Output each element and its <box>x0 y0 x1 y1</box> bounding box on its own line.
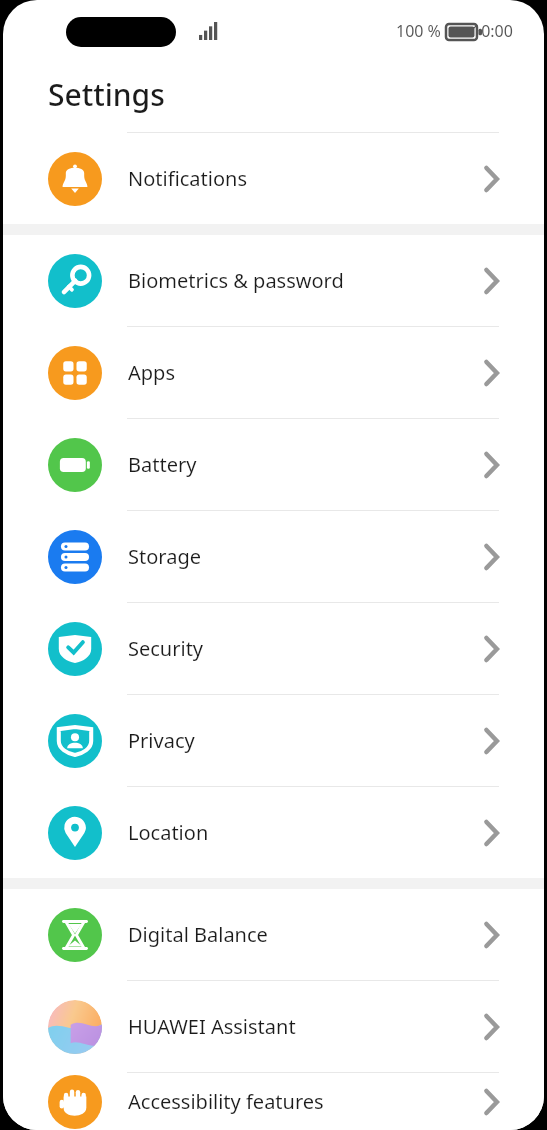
button[interactable]: Location <box>3 786 544 878</box>
staticText: Digital Balance <box>128 921 268 948</box>
button[interactable]: Digital Balance <box>3 889 544 980</box>
staticText: Privacy <box>128 727 195 754</box>
button[interactable]: Storage <box>3 510 544 602</box>
button[interactable]: Privacy <box>3 694 544 786</box>
staticText: Notifications <box>128 165 247 192</box>
staticText: 10:00 <box>472 20 513 42</box>
button[interactable]: Battery <box>3 418 544 510</box>
staticText: 100 % <box>396 20 441 42</box>
button[interactable]: HUAWEI Assistant <box>3 980 544 1072</box>
button[interactable]: Security <box>3 602 544 694</box>
staticText: Security <box>128 635 204 662</box>
staticText: HUAWEI Assistant <box>128 1013 296 1040</box>
staticText: Battery <box>128 451 197 478</box>
staticText: Location <box>128 819 209 846</box>
button[interactable]: Apps <box>3 326 544 418</box>
staticText: Settings <box>48 74 165 115</box>
button[interactable]: Accessibility features <box>3 1072 544 1130</box>
staticText: Biometrics & password <box>128 267 344 294</box>
button[interactable]: Notifications <box>3 133 544 224</box>
staticText: Apps <box>128 359 175 386</box>
button[interactable]: Biometrics & password <box>3 235 544 326</box>
staticText: Accessibility features <box>128 1088 324 1115</box>
staticText: Storage <box>128 543 201 570</box>
